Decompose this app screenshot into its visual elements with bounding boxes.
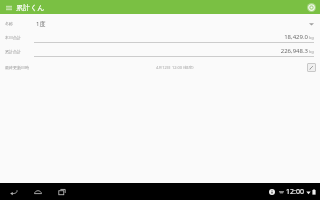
staticText: kg xyxy=(309,49,314,54)
staticText: 累計くん xyxy=(16,3,45,12)
button[interactable]: System information xyxy=(267,187,277,197)
staticText: 226,948.3 xyxy=(280,47,308,55)
button[interactable]: Home xyxy=(30,184,46,200)
staticText: 名称 xyxy=(5,21,13,26)
staticText: 12:00 xyxy=(286,187,304,197)
button[interactable]: 18,429.0 xyxy=(34,32,314,43)
button[interactable]: Open navigation menu xyxy=(3,2,14,13)
button[interactable]: 1度 xyxy=(34,18,314,29)
staticText: 最終更新日時 xyxy=(5,65,29,70)
staticText: 累計合計 xyxy=(5,49,21,54)
staticText: kg xyxy=(309,35,314,40)
staticText: 1度 xyxy=(36,20,46,28)
staticText: 4月12日 12:00 (都度) xyxy=(156,65,194,70)
button[interactable]: Recent apps xyxy=(54,184,70,200)
button[interactable]: Edit xyxy=(307,63,316,72)
staticText: 本日合計 xyxy=(5,35,21,40)
button[interactable]: Record xyxy=(305,1,317,13)
button[interactable]: 226,948.3 xyxy=(34,46,314,57)
button[interactable]: Back xyxy=(6,184,22,200)
staticText: 18,429.0 xyxy=(284,33,308,41)
